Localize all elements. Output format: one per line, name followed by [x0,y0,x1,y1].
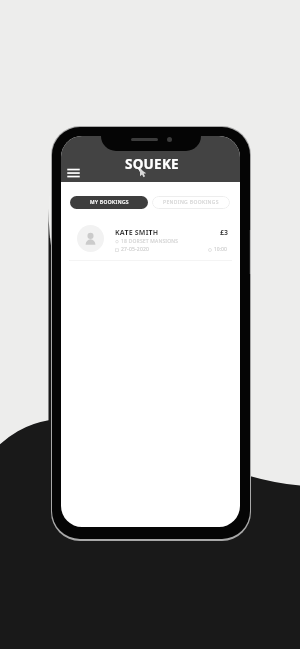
staticText: MY BOOKINGS [90,199,129,206]
button[interactable]: Menu [63,164,84,182]
staticText: £3 [220,228,229,238]
button[interactable]: MY BOOKINGS [70,196,148,209]
staticText: 18 DORSET MANSIONS [121,238,179,245]
staticText: KATE SMITH [115,228,159,238]
button[interactable]: KATE SMITH [61,222,240,258]
button[interactable]: PENDING BOOKINGS [152,196,230,209]
staticText: 10:00 [214,246,227,253]
staticText: PENDING BOOKINGS [163,199,219,206]
staticText: 27-05-2020 [121,246,150,253]
staticText: SQUEKE [125,155,179,173]
